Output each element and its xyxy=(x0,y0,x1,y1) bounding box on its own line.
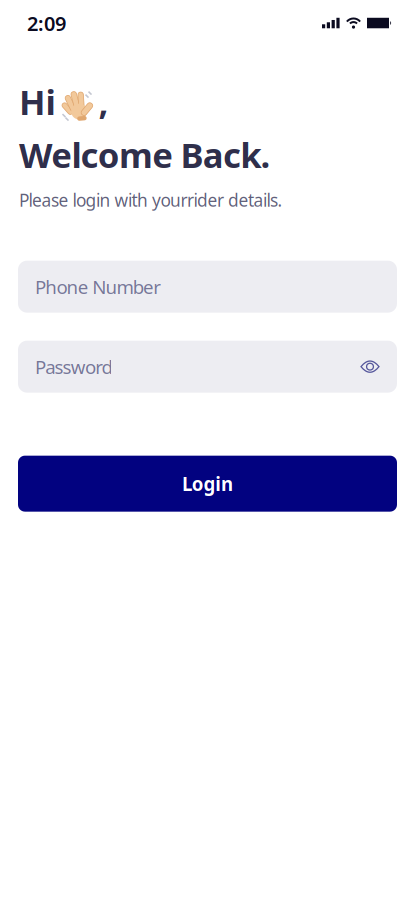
staticText: , xyxy=(98,79,108,125)
staticText: Hi xyxy=(19,79,55,125)
staticText: 2:09 xyxy=(27,10,66,37)
staticText: Password xyxy=(35,354,112,379)
staticText: Phone Number xyxy=(35,274,161,299)
button[interactable]: Password xyxy=(18,341,397,393)
staticText: Welcome Back. xyxy=(19,132,270,178)
staticText: Please login with yourrider details. xyxy=(19,189,282,212)
button[interactable]: Login xyxy=(18,456,397,512)
staticText: Login xyxy=(182,471,233,496)
button[interactable]: Phone Number xyxy=(18,261,397,313)
button[interactable]: Show password xyxy=(360,360,397,374)
